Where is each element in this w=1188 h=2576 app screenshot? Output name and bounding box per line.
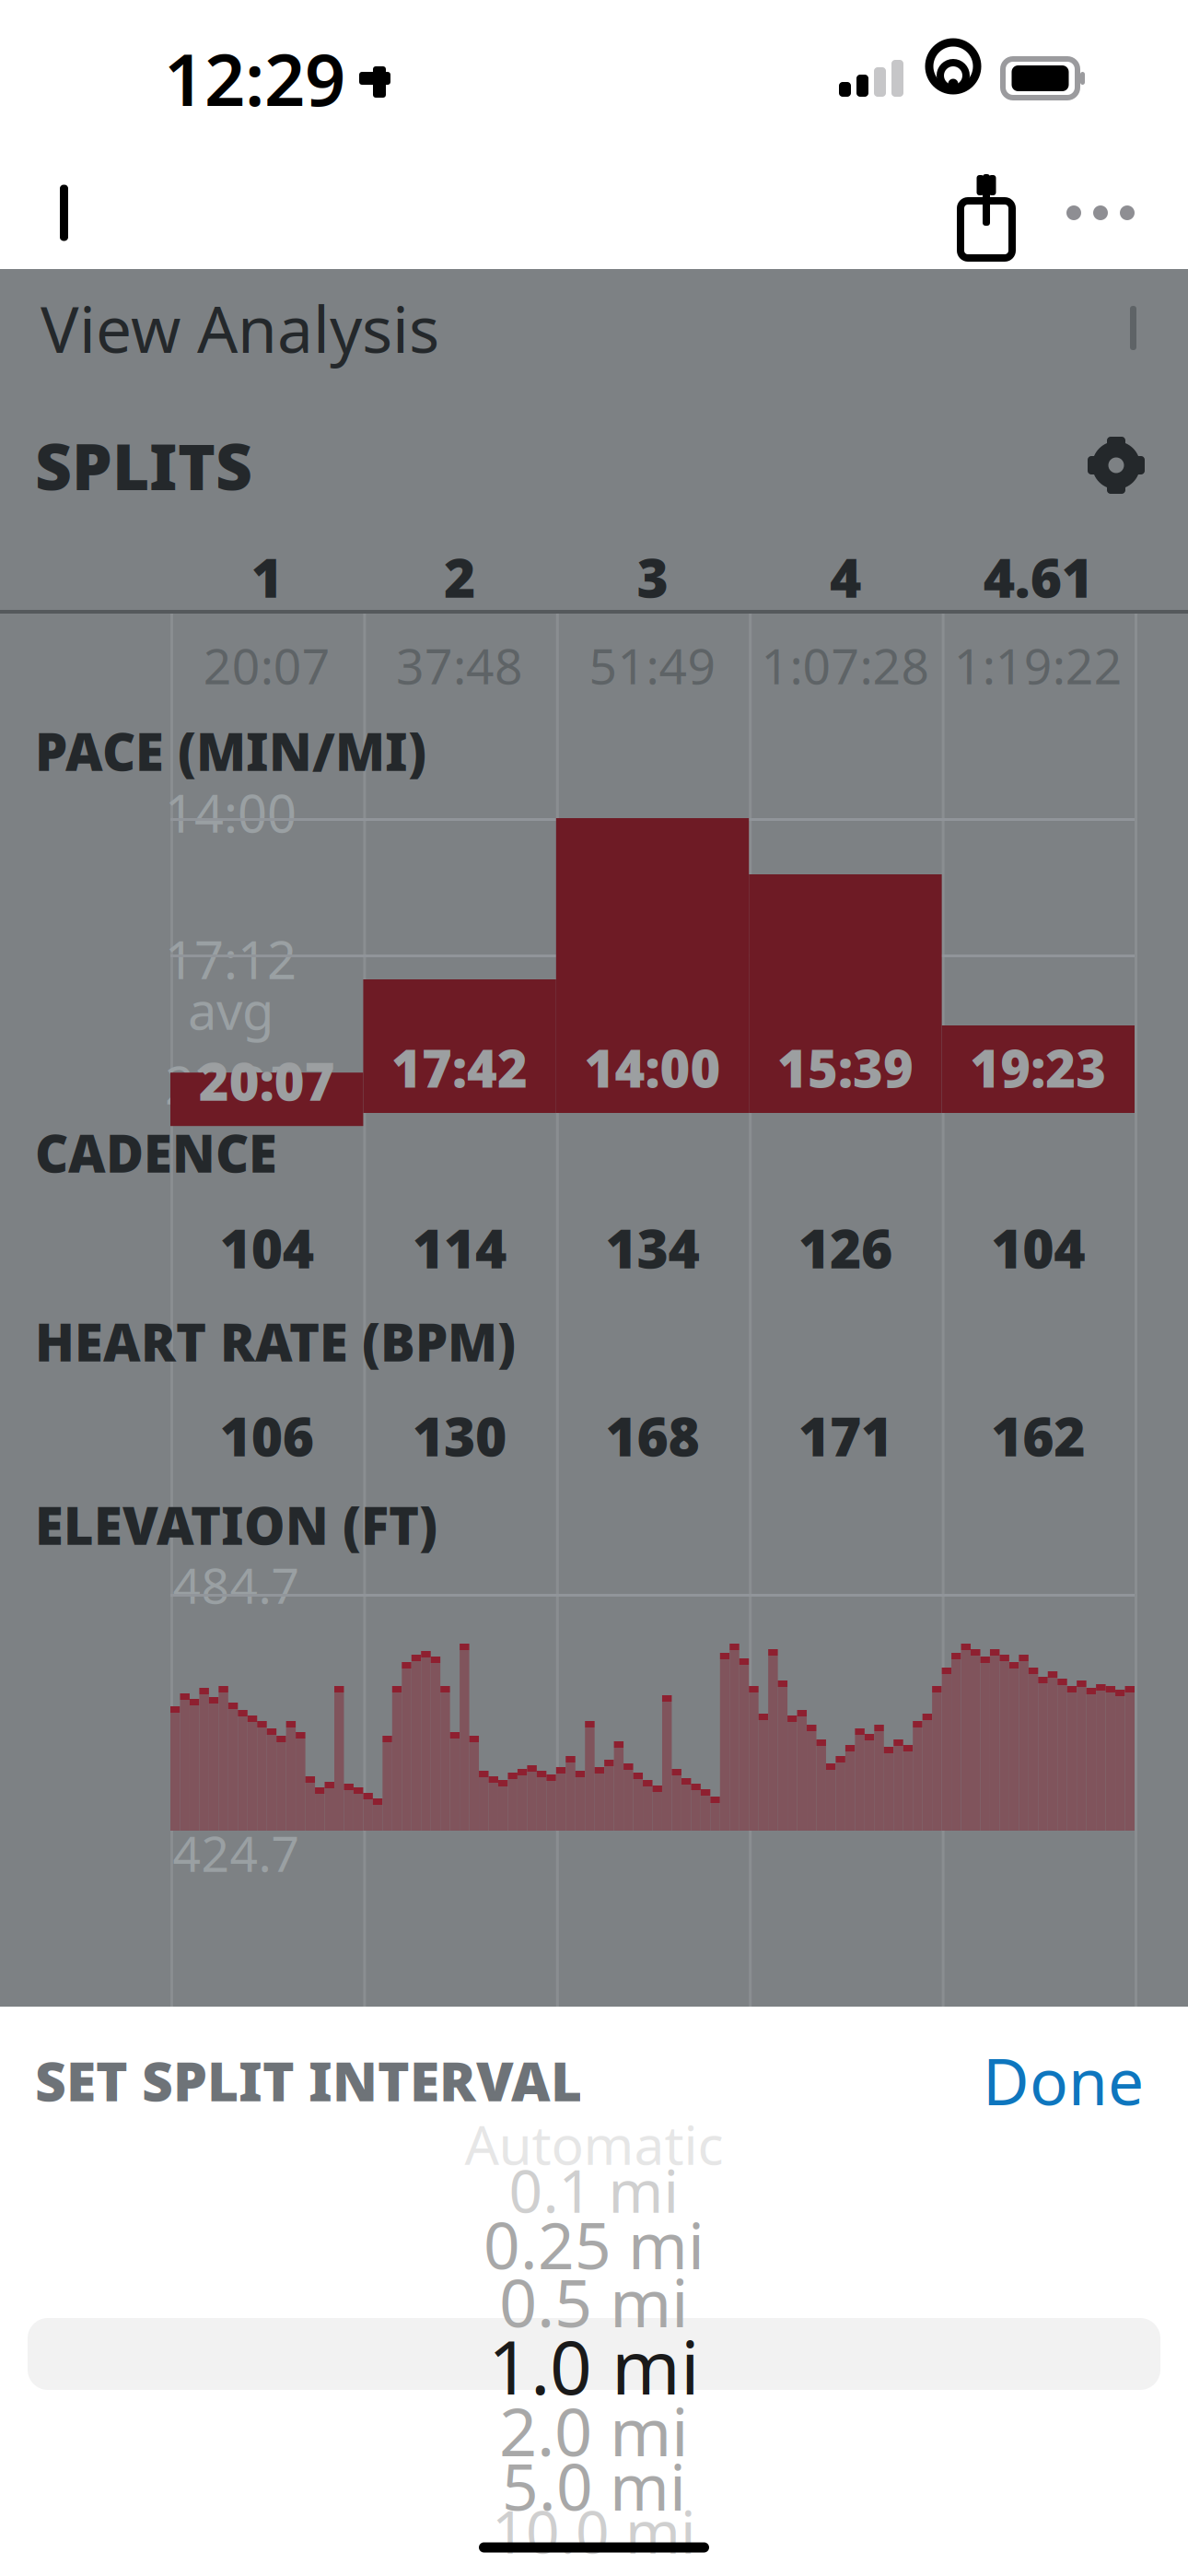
staticText: 424.7 <box>173 1820 300 1885</box>
staticText: 5.0 mi <box>502 2443 686 2528</box>
staticText: 37:48 <box>396 633 523 698</box>
staticText: 19:23 <box>970 1033 1106 1102</box>
button[interactable]: 0.1 mi <box>0 2164 1188 2216</box>
staticText: 126 <box>798 1212 892 1283</box>
staticText: 134 <box>606 1212 699 1283</box>
button[interactable]: 0.5 mi <box>0 2273 1188 2330</box>
staticText: 4 <box>830 541 861 613</box>
staticText: 171 <box>798 1399 892 1471</box>
staticText: avg <box>188 975 274 1044</box>
staticText: 20:07 <box>199 1046 335 1115</box>
staticText: 12:29 <box>164 31 345 126</box>
staticText: 130 <box>413 1399 507 1471</box>
button[interactable]: Automatic <box>0 2124 1188 2164</box>
button[interactable]: More options <box>1041 157 1160 269</box>
staticText: 17:12 <box>165 925 297 993</box>
button[interactable]: 1.0 mi <box>0 2330 1188 2402</box>
staticText: 104 <box>991 1212 1085 1283</box>
staticText: 3 <box>637 541 668 613</box>
button[interactable]: 0.25 mi <box>0 2216 1188 2273</box>
staticText: 17:42 <box>391 1033 528 1102</box>
button[interactable]: 5.0 mi <box>0 2459 1188 2512</box>
button[interactable]: Split settings <box>1074 423 1159 508</box>
staticText: 15:39 <box>777 1033 913 1102</box>
staticText: 1 <box>251 541 282 613</box>
staticText: PACE (MIN/MI) <box>35 717 426 785</box>
staticText: 1:07:28 <box>761 633 930 698</box>
staticText: 0.5 mi <box>499 2257 689 2345</box>
staticText: 0.25 mi <box>483 2202 705 2287</box>
staticText: 114 <box>413 1212 507 1283</box>
button[interactable]: 10.0 mi <box>0 2512 1188 2549</box>
staticText: 168 <box>606 1399 699 1471</box>
staticText: 484.7 <box>173 1552 300 1617</box>
button[interactable]: Back <box>18 157 120 269</box>
button[interactable]: View Analysis <box>0 269 1188 387</box>
staticText: 104 <box>220 1212 314 1283</box>
staticText: Done <box>983 2038 1144 2123</box>
staticText: 4.61 <box>983 541 1093 613</box>
staticText: 14:00 <box>165 778 297 847</box>
staticText: 14:00 <box>584 1033 721 1102</box>
staticText: 2 <box>444 541 475 613</box>
staticText: 1:19:22 <box>954 633 1122 698</box>
staticText: 10.0 mi <box>492 2492 696 2570</box>
staticText: SET SPLIT INTERVAL <box>35 2044 582 2116</box>
staticText: ELEVATION (FT) <box>35 1491 437 1559</box>
staticText: HEART RATE (BPM) <box>35 1307 516 1376</box>
staticText: View Analysis <box>41 286 439 370</box>
staticText: Automatic <box>465 2108 723 2180</box>
button[interactable]: Share <box>932 157 1041 269</box>
staticText: 106 <box>220 1399 314 1471</box>
button[interactable]: Done <box>972 2025 1155 2136</box>
staticText: CADENCE <box>35 1118 277 1187</box>
staticText: 20:07 <box>203 633 330 698</box>
staticText: 22:35 <box>165 1050 297 1119</box>
staticText: 51:49 <box>589 633 716 698</box>
staticText: 1.0 mi <box>488 2317 700 2415</box>
staticText: 162 <box>991 1399 1085 1471</box>
staticText: 0.1 mi <box>509 2151 679 2229</box>
button[interactable]: 2.0 mi <box>0 2402 1188 2459</box>
staticText: 2.0 mi <box>499 2386 689 2474</box>
staticText: SPLITS <box>35 423 252 508</box>
